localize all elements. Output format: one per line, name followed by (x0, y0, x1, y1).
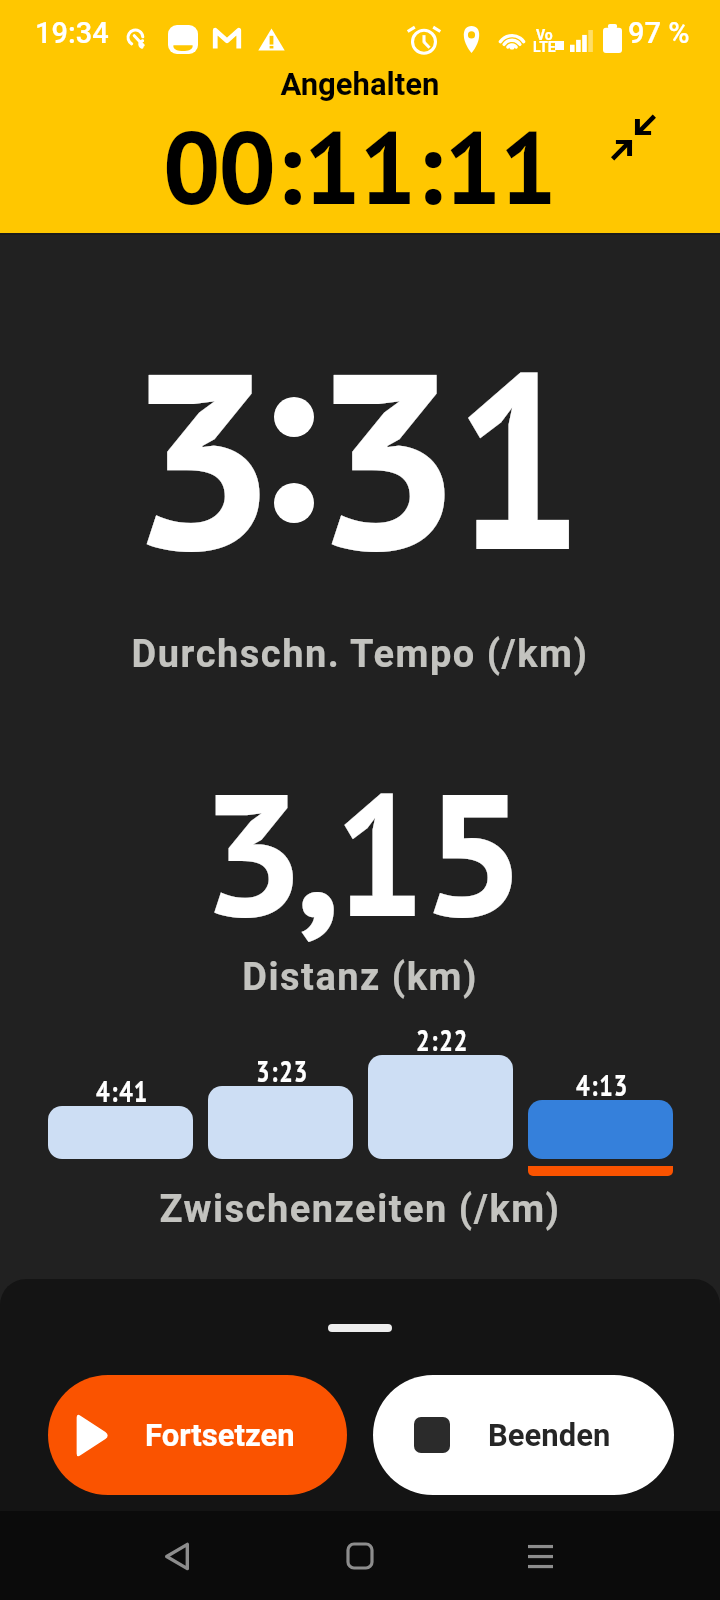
button[interactable]: Startbildschirm (328, 1524, 392, 1588)
staticText: 19:34 (35, 16, 109, 50)
staticText: Distanz (km) (0, 955, 720, 1000)
button[interactable] (48, 1106, 193, 1159)
button[interactable] (528, 1100, 673, 1159)
staticText: LTE (533, 39, 556, 55)
staticText: 1 (336, 741, 424, 964)
button[interactable] (208, 1086, 353, 1159)
button[interactable]: Letzte Apps (508, 1524, 572, 1588)
staticText: 3:23 (229, 1051, 336, 1090)
staticText: Fortsetzen (145, 1417, 295, 1453)
staticText: Beenden (488, 1417, 611, 1453)
staticText: Durchschn. Tempo (/km) (0, 632, 720, 677)
staticText: 3 (314, 298, 460, 618)
staticText: 3, (202, 741, 327, 964)
staticText: 3 (129, 298, 275, 618)
staticText: 97 % (628, 16, 690, 50)
staticText: 00:11:11 (164, 100, 557, 232)
button[interactable]: Fortsetzen (48, 1375, 347, 1495)
staticText: 2:22 (389, 1020, 496, 1059)
button[interactable]: Minimieren (599, 103, 667, 171)
staticText: Angehalten (0, 66, 720, 102)
button[interactable]: Zurück (145, 1524, 209, 1588)
staticText: 5 (423, 741, 525, 964)
staticText: 1 (456, 298, 582, 618)
staticText: 4:41 (69, 1071, 176, 1110)
button[interactable]: Beenden (373, 1375, 674, 1495)
staticText: Zwischenzeiten (/km) (0, 1187, 720, 1232)
staticText: Vo (536, 27, 553, 43)
staticText: 4:13 (549, 1065, 656, 1104)
button[interactable] (368, 1055, 513, 1159)
